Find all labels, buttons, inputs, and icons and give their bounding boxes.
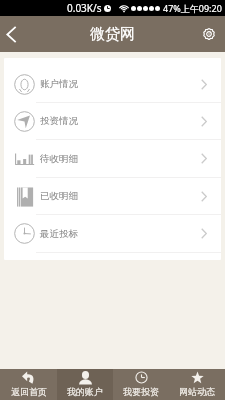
button[interactable]: Settings [198,23,220,45]
button[interactable]: 已收明细 [4,178,221,215]
staticText: 我要投资 [123,386,159,397]
staticText: 最近投标 [40,228,78,240]
staticText: 投资情况 [40,115,78,127]
button[interactable]: 最近投标 [4,215,221,253]
button[interactable]: 网站动态 [169,369,225,400]
button[interactable]: 返回首页 [0,369,57,400]
staticText: 已收明细 [40,190,78,202]
button[interactable]: 我的账户 [57,369,113,400]
button[interactable]: Back [0,23,23,46]
button[interactable]: 账户情况 [4,66,221,103]
staticText: 待收明细 [40,153,78,165]
staticText: 账户情况 [40,78,78,90]
staticText: 47%上午09:20 [163,2,222,14]
staticText: 微贷网 [90,25,135,44]
staticText: 网站动态 [179,386,215,397]
staticText: 0.03K/s [67,1,102,15]
button[interactable]: 投资情况 [4,103,221,140]
staticText: 返回首页 [11,386,47,397]
button[interactable]: 待收明细 [4,140,221,178]
button[interactable]: 我要投资 [113,369,169,400]
staticText: 我的账户 [67,386,103,397]
